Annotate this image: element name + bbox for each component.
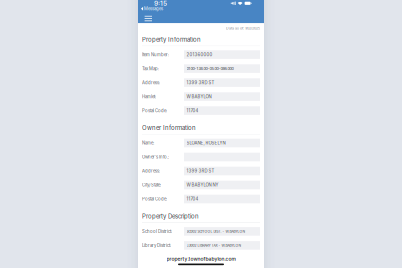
staticText: Address: bbox=[142, 168, 160, 174]
staticText: Item Number: bbox=[142, 52, 169, 57]
staticText: Hamlet: bbox=[142, 94, 156, 99]
staticText: Postal Code: bbox=[142, 196, 167, 202]
staticText: 0100-138.00-05.00-086.000 bbox=[187, 66, 234, 71]
staticText: Property Description bbox=[142, 213, 199, 220]
staticText: Tax Map: bbox=[142, 66, 159, 71]
staticText: 11704 bbox=[187, 108, 199, 113]
staticText: Messages bbox=[144, 6, 163, 11]
staticText: LD002 LIBRARY TAX - W.BABYLON bbox=[187, 243, 242, 247]
staticText: property.townofbabylon.com bbox=[166, 256, 235, 262]
staticText: Address: bbox=[142, 80, 160, 85]
staticText: 201360000 bbox=[187, 52, 213, 57]
staticText: City/State: bbox=[142, 182, 161, 188]
staticText: Library District: bbox=[142, 243, 171, 248]
staticText: Data as of: 1/02/2025 bbox=[226, 26, 260, 30]
staticText: 9:15 bbox=[154, 0, 167, 7]
staticText: W BABYLON bbox=[187, 94, 212, 99]
staticText: 1399 3RD ST bbox=[187, 168, 215, 174]
staticText: Owner's Info.: bbox=[142, 154, 169, 160]
staticText: School District: bbox=[142, 229, 172, 234]
staticText: SC002 SCHOOL DIST. - W.BABYLON bbox=[187, 229, 246, 233]
staticText: 1399 3RD ST bbox=[187, 80, 215, 85]
staticText: W BABYLON NY bbox=[187, 182, 219, 188]
button[interactable]: Menu bbox=[138, 11, 264, 23]
staticText: Name: bbox=[142, 140, 154, 146]
staticText: SLOANE, ROSELYN bbox=[187, 140, 226, 146]
staticText: Owner Information bbox=[142, 124, 196, 132]
staticText: Property Information bbox=[142, 36, 201, 43]
staticText: Postal Code: bbox=[142, 108, 167, 113]
staticText: 11704 bbox=[187, 196, 199, 202]
button[interactable]: Back to Messages bbox=[138, 7, 264, 11]
